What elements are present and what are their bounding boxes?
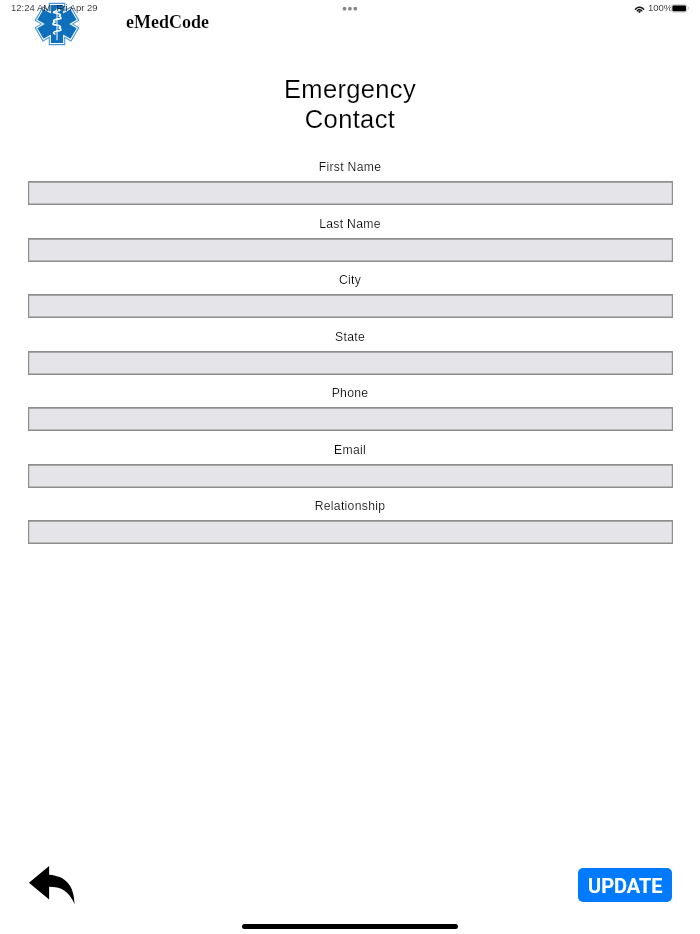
button[interactable]: eMedCode logo bbox=[33, 0, 81, 48]
button[interactable]: UPDATE bbox=[578, 868, 672, 902]
staticText: Emergency Contact bbox=[0, 75, 700, 133]
button[interactable]: Email bbox=[28, 464, 673, 488]
button[interactable]: First Name bbox=[28, 181, 673, 205]
button[interactable]: City bbox=[28, 294, 673, 318]
button[interactable]: State bbox=[28, 351, 673, 375]
staticText: UPDATE bbox=[588, 874, 663, 897]
staticText: Last Name bbox=[0, 217, 700, 231]
button[interactable]: Relationship bbox=[28, 520, 673, 544]
button[interactable]: Last Name bbox=[28, 238, 673, 262]
staticText: City bbox=[0, 273, 700, 287]
staticText: Phone bbox=[0, 386, 700, 400]
staticText: 100% bbox=[648, 2, 673, 13]
staticText: 12:24 AM Fri Apr 29 bbox=[11, 2, 98, 13]
staticText: Email bbox=[0, 443, 700, 457]
staticText: eMedCode bbox=[126, 12, 209, 32]
button[interactable]: Back bbox=[28, 864, 76, 904]
staticText: State bbox=[0, 330, 700, 344]
staticText: Relationship bbox=[0, 499, 700, 513]
staticText: First Name bbox=[0, 160, 700, 174]
button[interactable]: Phone bbox=[28, 407, 673, 431]
